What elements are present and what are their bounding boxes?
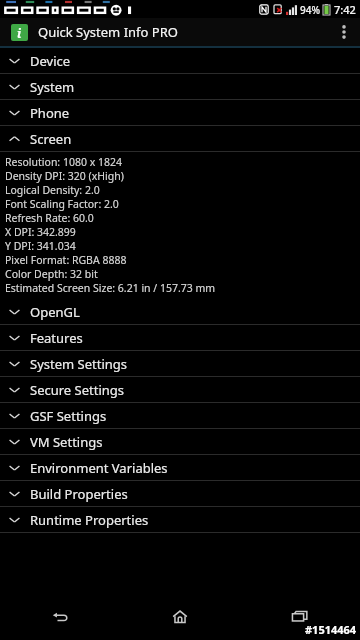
staticText: Resolution: 1080 x 1824: [5, 155, 360, 169]
staticText: Secure Settings: [30, 381, 125, 399]
button[interactable]: Phone: [0, 100, 360, 125]
staticText: Logical Density: 2.0: [5, 183, 360, 197]
button[interactable]: Secure Settings: [0, 377, 360, 402]
button[interactable]: System: [0, 74, 360, 99]
staticText: X DPI: 342.899: [5, 225, 360, 239]
button[interactable]: Features: [0, 325, 360, 350]
staticText: 94%: [300, 3, 320, 17]
staticText: System: [30, 78, 75, 96]
staticText: Color Depth: 32 bit: [5, 267, 360, 281]
staticText: Environment Variables: [30, 459, 168, 477]
staticText: Font Scaling Factor: 2.0: [5, 197, 360, 211]
button[interactable]: VM Settings: [0, 429, 360, 454]
staticText: Phone: [30, 104, 70, 122]
staticText: Estimated Screen Size: 6.21 in / 157.73 …: [5, 281, 360, 295]
staticText: Screen: [30, 130, 72, 148]
staticText: Quick System Info PRO: [38, 23, 178, 41]
staticText: OpenGL: [30, 303, 80, 321]
staticText: GSF Settings: [30, 407, 107, 425]
staticText: 7:42: [334, 2, 356, 17]
button[interactable]: Back: [0, 594, 120, 640]
staticText: Refresh Rate: 60.0: [5, 211, 360, 225]
button[interactable]: Screen: [0, 126, 360, 151]
staticText: System Settings: [30, 355, 128, 373]
button[interactable]: OpenGL: [0, 299, 360, 324]
button[interactable]: Recents: [240, 594, 360, 640]
staticText: #1514464: [305, 622, 357, 637]
staticText: i: [17, 25, 22, 41]
staticText: Device: [30, 52, 71, 70]
button[interactable]: Runtime Properties: [0, 507, 360, 532]
button[interactable]: GSF Settings: [0, 403, 360, 428]
staticText: Pixel Format: RGBA 8888: [5, 253, 360, 267]
button[interactable]: More options: [328, 18, 360, 46]
staticText: VM Settings: [30, 433, 103, 451]
button[interactable]: Environment Variables: [0, 455, 360, 480]
button[interactable]: Build Properties: [0, 481, 360, 506]
button[interactable]: Device: [0, 48, 360, 73]
staticText: Density DPI: 320 (xHigh): [5, 169, 360, 183]
staticText: Build Properties: [30, 485, 128, 503]
staticText: Features: [30, 329, 83, 347]
button[interactable]: Home: [120, 594, 240, 640]
staticText: Runtime Properties: [30, 511, 149, 529]
button[interactable]: System Settings: [0, 351, 360, 376]
staticText: Y DPI: 341.034: [5, 239, 360, 253]
